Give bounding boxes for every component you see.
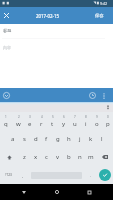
button[interactable]: b: [63, 148, 74, 166]
staticText: u: [73, 120, 77, 128]
button[interactable]: Collapse: [0, 89, 13, 102]
staticText: ,: [22, 173, 24, 178]
staticText: 6: [63, 115, 65, 119]
button[interactable]: g: [52, 130, 63, 148]
button[interactable]: 2: [12, 112, 24, 130]
staticText: l: [101, 135, 103, 143]
staticText: e: [28, 120, 32, 128]
button[interactable]: j: [74, 130, 85, 148]
button[interactable]: x: [30, 148, 41, 166]
button[interactable]: Shift: [0, 148, 18, 166]
staticText: 保存: [95, 13, 104, 18]
staticText: b: [67, 153, 71, 161]
staticText: j: [79, 135, 81, 143]
button[interactable]: Space: [28, 166, 85, 184]
staticText: q: [4, 120, 8, 128]
button[interactable]: c: [41, 148, 52, 166]
staticText: 1: [5, 115, 7, 119]
staticText: y: [62, 120, 66, 128]
staticText: 2017-02-15: [36, 13, 59, 19]
staticText: 0: [107, 115, 109, 119]
staticText: 8: [85, 115, 87, 119]
button[interactable]: 1: [0, 112, 12, 130]
button[interactable]: 9: [91, 112, 102, 130]
staticText: d: [34, 135, 38, 143]
staticText: a: [11, 135, 15, 143]
button[interactable]: s: [19, 130, 30, 148]
staticText: g: [56, 135, 60, 143]
button[interactable]: k: [85, 130, 96, 148]
staticText: f: [45, 135, 48, 143]
staticText: 3: [29, 115, 31, 119]
staticText: c: [45, 153, 48, 161]
button[interactable]: 7: [69, 112, 80, 130]
staticText: 标题: [3, 28, 12, 33]
button[interactable]: h: [63, 130, 74, 148]
button[interactable]: 6: [58, 112, 69, 130]
staticText: o: [95, 120, 99, 128]
button[interactable]: Home: [49, 184, 65, 200]
staticText: 9:42: [100, 1, 108, 6]
staticText: 内容: [3, 45, 11, 50]
button[interactable]: 5: [47, 112, 58, 130]
button[interactable]: Voice input: [103, 102, 113, 112]
button[interactable]: ?123: [0, 166, 17, 184]
staticText: p: [106, 120, 110, 128]
button[interactable]: 4: [36, 112, 47, 130]
button[interactable]: v: [52, 148, 63, 166]
staticText: 2: [18, 115, 20, 119]
button[interactable]: Recents: [81, 184, 97, 200]
button[interactable]: l: [96, 130, 107, 148]
button[interactable]: a: [7, 130, 19, 148]
button[interactable]: 保存: [91, 7, 113, 24]
button[interactable]: Backspace: [96, 148, 113, 166]
staticText: x: [34, 153, 38, 161]
button[interactable]: 0: [102, 112, 113, 130]
button[interactable]: d: [30, 130, 41, 148]
staticText: .: [90, 173, 92, 178]
staticText: h: [67, 135, 71, 143]
button[interactable]: n: [74, 148, 85, 166]
staticText: 4: [41, 115, 43, 119]
button[interactable]: f: [41, 130, 52, 148]
button[interactable]: ,: [17, 166, 28, 184]
staticText: i: [85, 120, 87, 128]
button[interactable]: 8: [80, 112, 91, 130]
button[interactable]: Back: [16, 184, 32, 200]
staticText: 5: [52, 115, 54, 119]
button[interactable]: Enter: [96, 166, 113, 184]
staticText: v: [56, 153, 60, 161]
staticText: n: [78, 153, 82, 161]
staticText: w: [16, 120, 21, 128]
staticText: z: [23, 153, 26, 161]
button[interactable]: More options: [99, 91, 108, 100]
button[interactable]: Close: [0, 9, 13, 22]
staticText: s: [23, 135, 26, 143]
staticText: t: [51, 120, 54, 128]
staticText: 7: [74, 115, 76, 119]
staticText: r: [40, 120, 43, 128]
button[interactable]: m: [85, 148, 96, 166]
staticText: ?123: [5, 173, 12, 177]
button[interactable]: z: [18, 148, 30, 166]
staticText: m: [88, 153, 94, 161]
button[interactable]: Reminder: [86, 89, 99, 102]
staticText: 9: [96, 115, 98, 119]
button[interactable]: 3: [24, 112, 36, 130]
staticText: k: [89, 135, 93, 143]
